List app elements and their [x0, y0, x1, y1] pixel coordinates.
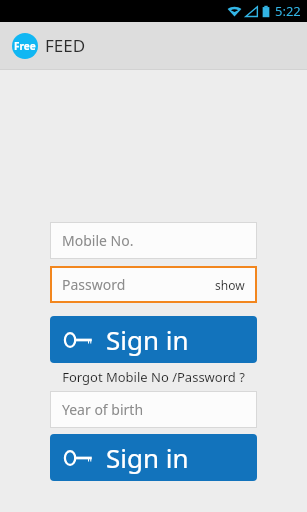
staticText: Sign in [106, 322, 189, 357]
button[interactable]: Password [50, 266, 257, 303]
staticText: Password [62, 275, 126, 294]
other: Key [64, 450, 94, 466]
staticText: 5:22 [275, 2, 301, 20]
staticText: show [215, 277, 245, 293]
button[interactable]: Year of birth [50, 391, 257, 428]
staticText: FEED [45, 34, 86, 57]
staticText: Free [14, 39, 36, 53]
button[interactable]: Mobile No. [50, 222, 257, 259]
staticText: Year of birth [62, 400, 144, 419]
staticText: Mobile No. [62, 231, 134, 250]
button[interactable]: Key [50, 434, 257, 481]
button[interactable]: Key [50, 316, 257, 363]
staticText: Forgot Mobile No /Password ? [50, 368, 257, 386]
other: Key [64, 332, 94, 348]
staticText: Sign in [106, 440, 189, 475]
